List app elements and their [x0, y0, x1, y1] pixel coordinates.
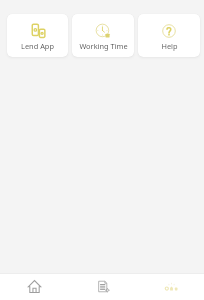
- staticText: Working Time: [79, 41, 128, 51]
- staticText: Help: [161, 41, 178, 51]
- button[interactable]: Loans: [136, 274, 204, 299]
- button[interactable]: Home: [0, 274, 68, 299]
- button[interactable]: Working Time: [72, 14, 134, 57]
- button[interactable]: Documents: [68, 274, 136, 299]
- staticText: Lend App: [21, 41, 54, 51]
- button[interactable]: Lend App: [7, 14, 68, 57]
- button[interactable]: Help: [138, 14, 200, 57]
